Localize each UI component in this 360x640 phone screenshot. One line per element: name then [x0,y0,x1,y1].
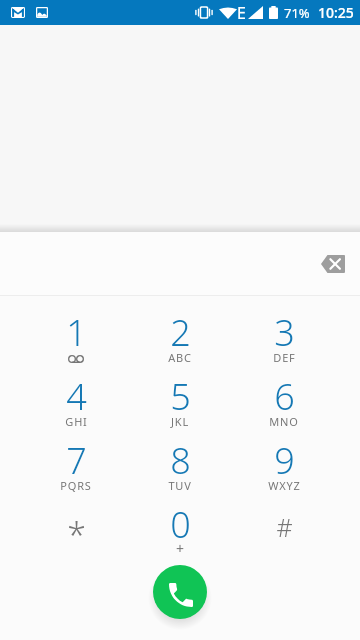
button[interactable]: 5 [128,360,232,424]
staticText: 5 [170,372,191,421]
button[interactable]: 6 [232,360,336,424]
staticText: 0 [170,500,191,549]
button[interactable]: 1 [24,296,128,360]
staticText: 7 [66,436,87,485]
button[interactable]: * [24,488,128,552]
button[interactable]: 2 [128,296,232,360]
staticText: 71% [284,4,310,22]
staticText: 6 [274,372,295,421]
staticText: ABC [168,350,192,365]
button[interactable]: 7 [24,424,128,488]
staticText: E [237,2,246,24]
button[interactable]: 8 [128,424,232,488]
button[interactable]: 9 [232,424,336,488]
staticText: TUV [168,478,192,493]
staticText: WXYZ [268,478,301,493]
staticText: 10:25 [318,3,354,22]
button[interactable]: 4 [24,360,128,424]
staticText: MNO [269,414,299,429]
staticText: JKL [171,414,189,429]
staticText: 9 [274,436,295,485]
staticText: 1 [66,308,87,357]
button[interactable]: Backspace [313,244,353,284]
staticText: PQRS [60,478,92,493]
staticText: * [67,512,86,558]
staticText: 2 [170,308,191,357]
staticText: GHI [65,414,88,429]
button[interactable]: 0 [128,488,232,552]
staticText: 3 [274,308,295,357]
staticText: DEF [273,350,296,365]
button[interactable]: Call [153,565,207,619]
staticText: 8 [170,436,191,485]
staticText: # [276,510,293,544]
button[interactable]: # [232,488,336,552]
button[interactable]: 3 [232,296,336,360]
staticText: + [176,539,185,558]
staticText: 4 [66,372,87,421]
